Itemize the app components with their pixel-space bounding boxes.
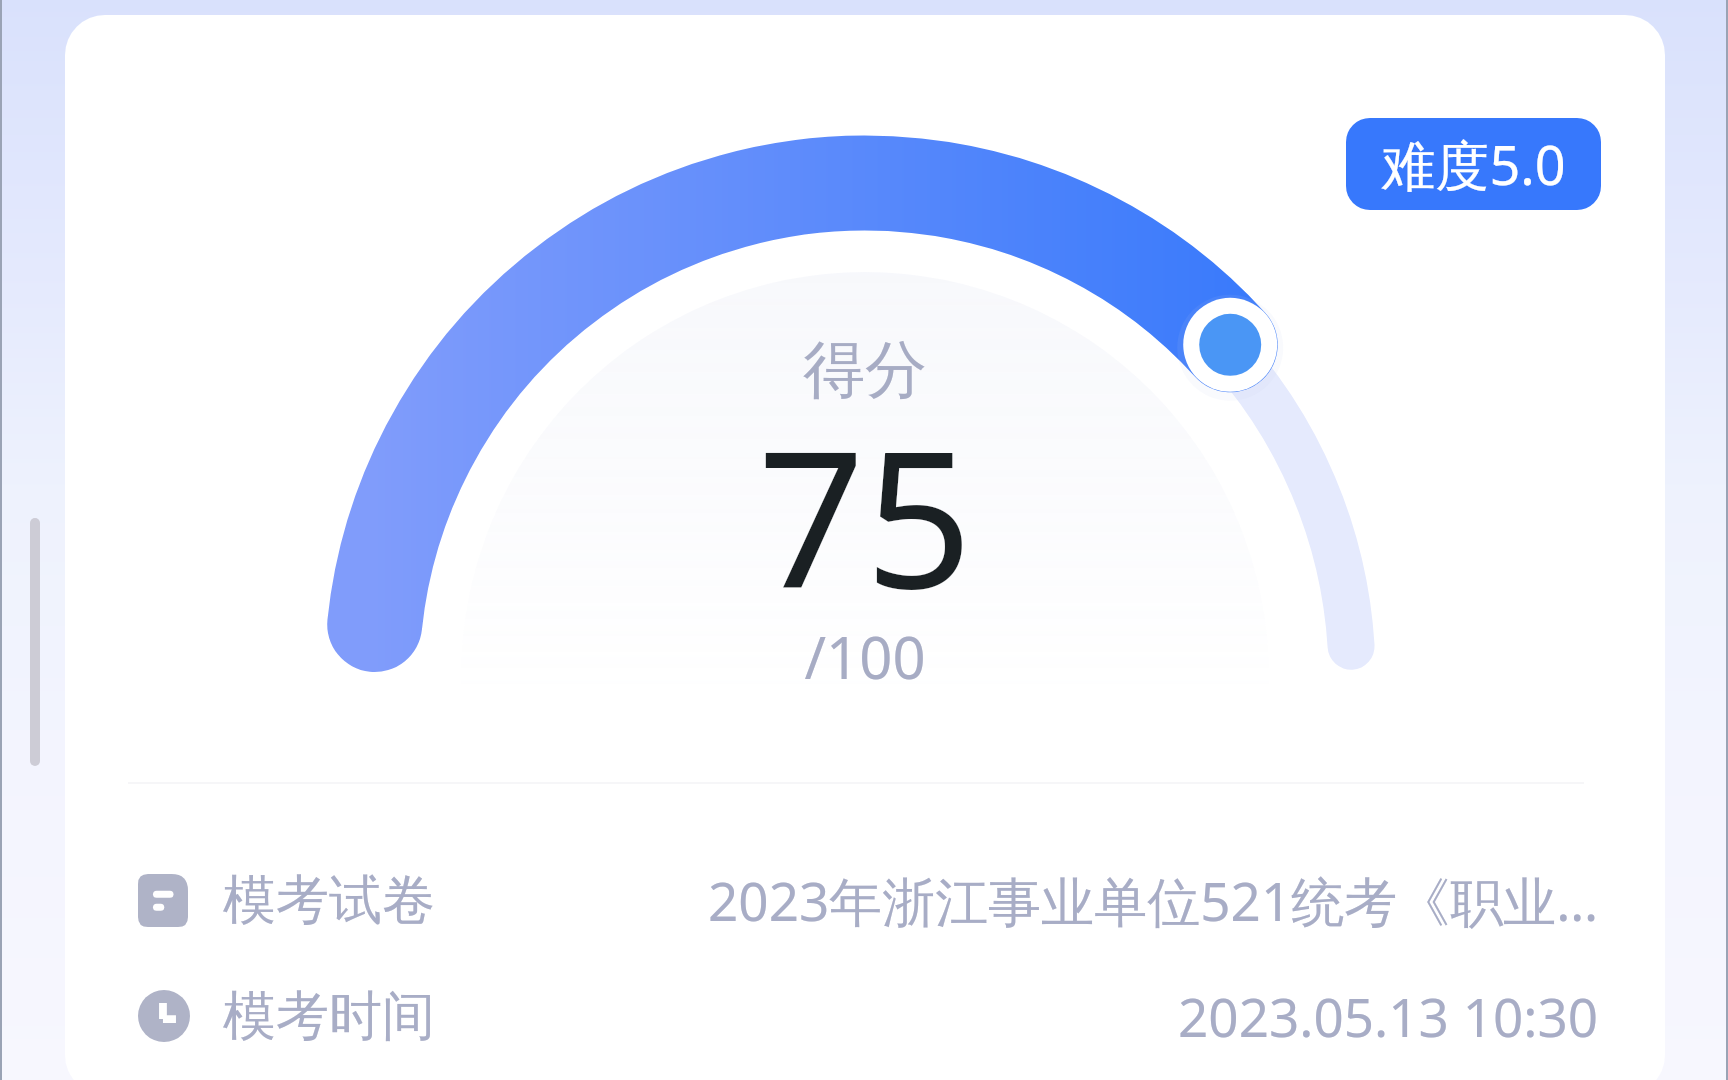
other: Exam time <box>138 990 190 1042</box>
other: Exam paper <box>138 874 188 927</box>
button[interactable]: Exam paper <box>128 849 1599 951</box>
staticText: /100 <box>804 617 926 696</box>
staticText: 75 <box>757 387 973 643</box>
staticText: 模考时间 <box>223 983 435 1050</box>
staticText: 难度5.0 <box>1381 127 1566 201</box>
staticText: 得分 <box>803 331 927 409</box>
staticText: 2023年浙江事业单位521统考《职业… <box>708 864 1599 936</box>
staticText: 2023.05.13 10:30 <box>1178 980 1599 1052</box>
button[interactable]: 难度5.0 <box>1346 118 1601 210</box>
button[interactable]: Exam time <box>128 965 1599 1067</box>
staticText: 模考试卷 <box>223 867 435 934</box>
